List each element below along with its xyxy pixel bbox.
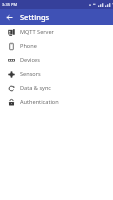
button[interactable]: Data & sync bbox=[0, 81, 113, 95]
staticText: Devices bbox=[20, 56, 40, 64]
button[interactable]: Back bbox=[3, 11, 15, 23]
staticText: Phone bbox=[20, 42, 37, 50]
button[interactable]: Sensors bbox=[0, 67, 113, 81]
staticText: Sensors bbox=[20, 70, 41, 78]
staticText: 3:35 PM bbox=[2, 2, 18, 7]
staticText: Data & sync bbox=[20, 84, 52, 92]
button[interactable]: Devices bbox=[0, 53, 113, 67]
button[interactable]: Authentication bbox=[0, 95, 113, 109]
staticText: MQTT Server bbox=[20, 28, 54, 36]
staticText: Settings bbox=[20, 12, 50, 22]
button[interactable]: MQTT Server bbox=[0, 25, 113, 39]
staticText: Authentication bbox=[20, 98, 59, 106]
button[interactable]: Phone bbox=[0, 39, 113, 53]
